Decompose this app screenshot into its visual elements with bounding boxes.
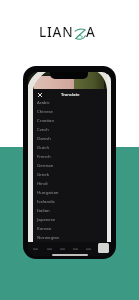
button[interactable]: Croatian [33, 115, 107, 124]
staticText: Korean [37, 225, 52, 231]
staticText: Hindi [37, 180, 48, 186]
staticText: Croatian [37, 117, 55, 123]
button[interactable]: Danish [33, 133, 107, 142]
button[interactable]: Norwegian [33, 232, 107, 241]
button[interactable]: Arabic [33, 97, 107, 106]
button[interactable]: Settings [82, 242, 95, 254]
staticText: Dutch [37, 144, 50, 150]
staticText: Czech [37, 126, 49, 132]
staticText: Hungarian [37, 189, 59, 195]
staticText: Chinese [37, 108, 54, 114]
button[interactable]: Greek [33, 169, 107, 178]
staticText: Arabic [37, 99, 50, 105]
button[interactable]: Hindi [33, 178, 107, 187]
staticText: Danish [37, 135, 52, 141]
staticText: German [37, 162, 54, 168]
button[interactable]: French [33, 151, 107, 160]
button[interactable]: Icelandic [33, 196, 107, 205]
staticText: A [86, 23, 96, 41]
button[interactable]: Search [42, 242, 56, 254]
staticText: Greek [37, 171, 49, 177]
button[interactable]: Profile [95, 242, 111, 254]
button[interactable]: Home [28, 242, 42, 254]
button[interactable]: Saved [56, 242, 69, 254]
button[interactable]: Hungarian [33, 187, 107, 196]
button[interactable]: Czech [33, 124, 107, 133]
button[interactable]: Japanese [33, 214, 107, 223]
staticText: Italian [37, 207, 50, 213]
staticText: Japanese [37, 216, 56, 222]
button[interactable]: Close [34, 89, 45, 100]
button[interactable]: Favourites [69, 242, 82, 254]
button[interactable]: Italian [33, 205, 107, 214]
staticText: Norwegian [37, 234, 60, 240]
button[interactable]: German [33, 160, 107, 169]
button[interactable]: Dutch [33, 142, 107, 151]
staticText: Icelandic [37, 198, 55, 204]
button[interactable]: Chinese [33, 106, 107, 115]
staticText: LIAN [39, 23, 74, 41]
staticText: Translate [61, 92, 80, 98]
staticText: French [37, 153, 51, 159]
button[interactable]: Korean [33, 223, 107, 232]
